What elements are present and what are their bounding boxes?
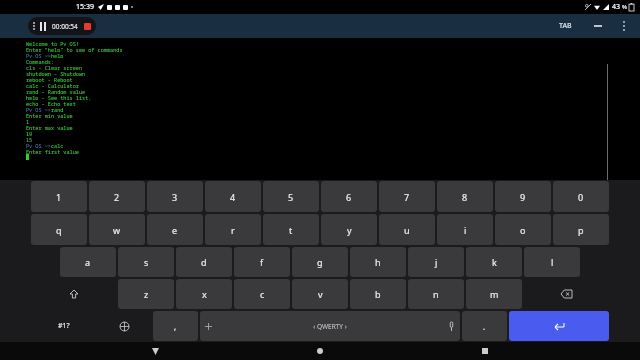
staticText: h <box>375 256 381 268</box>
button[interactable]: u <box>379 214 435 245</box>
button[interactable]: t <box>263 214 319 245</box>
staticText: calc - Calculator <box>26 82 79 88</box>
button[interactable]: g <box>292 247 348 277</box>
button[interactable]: d <box>176 247 232 277</box>
other: Enter <box>554 321 564 331</box>
staticText: f <box>260 256 264 268</box>
staticText: , <box>174 321 177 332</box>
button[interactable]: c <box>234 279 290 309</box>
staticText: 2 <box>114 191 120 203</box>
button[interactable]: 5 <box>263 181 319 212</box>
staticText: b <box>375 288 381 300</box>
other: Change language <box>120 322 129 331</box>
staticText: g <box>317 256 323 268</box>
staticText: Py_OS ~> <box>26 142 51 148</box>
button[interactable]: i <box>437 214 493 245</box>
button[interactable]: r <box>205 214 261 245</box>
staticText: 00:00:54 <box>52 22 78 31</box>
staticText: l <box>551 256 554 268</box>
staticText: Commands: <box>26 58 55 64</box>
staticText: v <box>318 288 323 300</box>
staticText: 43 <box>612 2 621 12</box>
staticText: 1 <box>56 191 62 203</box>
staticText: echo - Echo text <box>26 100 76 106</box>
staticText: a <box>85 256 91 268</box>
staticText: 0 <box>578 191 584 203</box>
staticText: 8 <box>462 191 468 203</box>
button[interactable]: k <box>466 247 522 277</box>
button[interactable]: 9 <box>495 181 551 212</box>
staticText: d <box>201 256 207 268</box>
staticText: help - See this list. <box>26 94 92 100</box>
staticText: y <box>347 224 352 236</box>
staticText: 3 <box>172 191 178 203</box>
staticText: rand - Random value <box>26 88 86 94</box>
button[interactable]: j <box>408 247 464 277</box>
button[interactable]: e <box>147 214 203 245</box>
button[interactable]: y <box>321 214 377 245</box>
button[interactable]: o <box>495 214 551 245</box>
staticText: 15:39 <box>76 2 94 12</box>
staticText: #1? <box>58 321 70 331</box>
staticText: k <box>492 256 497 268</box>
staticText: calc <box>51 142 64 148</box>
button[interactable]: 00:00:54 <box>28 17 96 35</box>
button[interactable]: n <box>408 279 464 309</box>
button[interactable]: a <box>60 247 116 277</box>
button[interactable]: Back <box>145 342 165 360</box>
button[interactable]: Backspace <box>524 279 609 309</box>
button[interactable]: 4 <box>205 181 261 212</box>
staticText: reboot - Reboot <box>26 76 73 82</box>
button[interactable]: x <box>176 279 232 309</box>
staticText: Enter first value <box>26 148 79 154</box>
button[interactable]: q <box>31 214 87 245</box>
button[interactable]: 7 <box>379 181 435 212</box>
button[interactable]: Change language <box>98 311 151 341</box>
staticText: 19 <box>26 130 33 136</box>
button[interactable]: . <box>462 311 507 341</box>
other: Backspace <box>561 290 572 298</box>
button[interactable]: Home <box>310 342 330 360</box>
staticText: 6 <box>346 191 352 203</box>
button[interactable]: m <box>466 279 522 309</box>
staticText: p <box>578 224 584 236</box>
button[interactable]: 8 <box>437 181 493 212</box>
button[interactable]: TAB <box>555 19 576 33</box>
button[interactable]: Minimize <box>590 18 606 34</box>
staticText: i <box>464 224 467 236</box>
button[interactable]: 1 <box>31 181 87 212</box>
button[interactable]: #1? <box>31 311 96 341</box>
staticText: TAB <box>559 21 572 31</box>
button[interactable]: Enter <box>509 311 609 341</box>
button[interactable]: More options <box>616 18 632 34</box>
button[interactable]: f <box>234 247 290 277</box>
button[interactable]: s <box>118 247 174 277</box>
staticText: Py_OS ~> <box>26 106 51 112</box>
staticText: m <box>490 288 499 300</box>
button[interactable]: 3 <box>147 181 203 212</box>
button[interactable]: p <box>553 214 609 245</box>
staticText: 5 <box>288 191 294 203</box>
button[interactable]: v <box>292 279 348 309</box>
button[interactable]: Space <box>200 311 460 341</box>
button[interactable]: z <box>118 279 174 309</box>
button[interactable]: 0 <box>553 181 609 212</box>
button[interactable]: w <box>89 214 145 245</box>
staticText: r <box>231 224 235 236</box>
button[interactable]: h <box>350 247 406 277</box>
staticText: ‹ QWERTY › <box>313 322 347 331</box>
staticText: rand <box>51 106 64 112</box>
button[interactable]: 2 <box>89 181 145 212</box>
staticText: 9 <box>520 191 526 203</box>
button[interactable]: , <box>153 311 198 341</box>
staticText: 1 <box>26 118 30 124</box>
staticText: n <box>433 288 439 300</box>
button[interactable]: Shift <box>31 279 116 309</box>
button[interactable]: b <box>350 279 406 309</box>
button[interactable]: Recents <box>475 342 495 360</box>
staticText: Enter min value <box>26 112 73 118</box>
button[interactable]: l <box>524 247 580 277</box>
staticText: c <box>260 288 265 300</box>
staticText: o <box>520 224 526 236</box>
button[interactable]: 6 <box>321 181 377 212</box>
